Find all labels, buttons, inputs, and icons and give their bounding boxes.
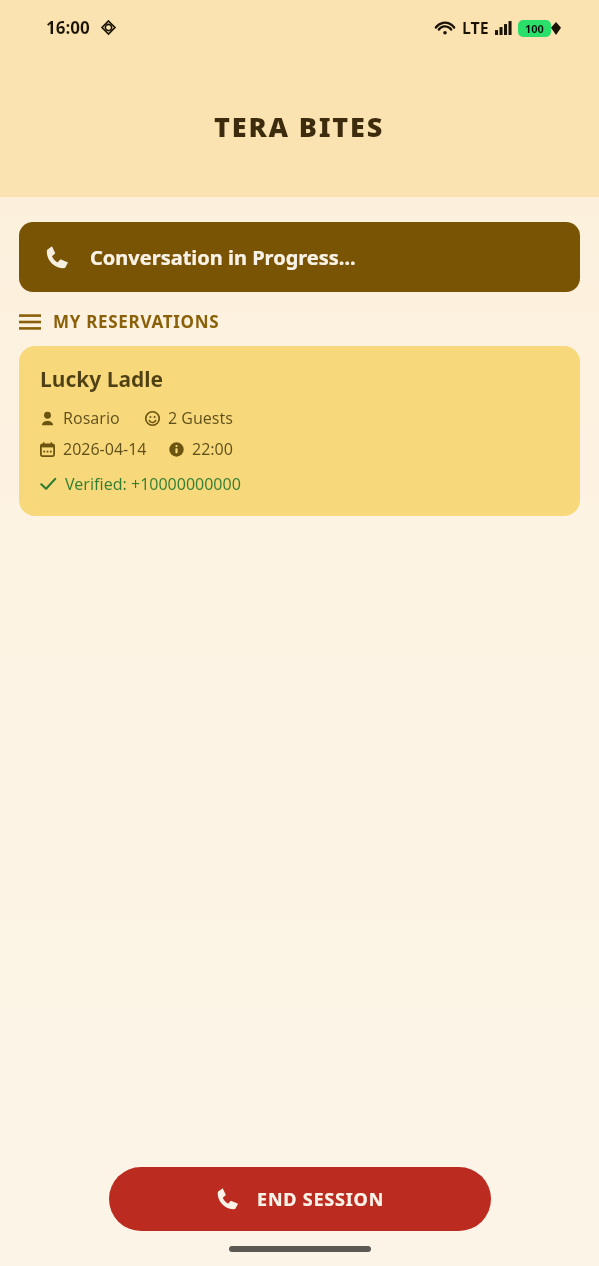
staticText: 16:00 [46,16,90,39]
staticText: 22:00 [192,438,233,460]
staticText: Lucky Ladle [40,365,164,394]
button[interactable]: MY RESERVATIONS [19,310,220,333]
staticText: MY RESERVATIONS [53,310,220,333]
staticText: TERA BITES [214,108,385,145]
staticText: Conversation in Progress... [90,244,356,271]
staticText: LTE [462,17,489,39]
button[interactable]: Lucky Ladle [19,346,580,516]
button[interactable]: Conversation in Progress... [19,222,580,292]
staticText: Rosario [63,407,120,429]
staticText: 2026-04-14 [63,438,147,460]
staticText: Verified: +10000000000 [65,473,241,495]
staticText: 100 [525,21,544,36]
staticText: END SESSION [257,1187,385,1212]
staticText: 2 Guests [168,407,233,429]
button[interactable]: END SESSION [109,1167,491,1231]
